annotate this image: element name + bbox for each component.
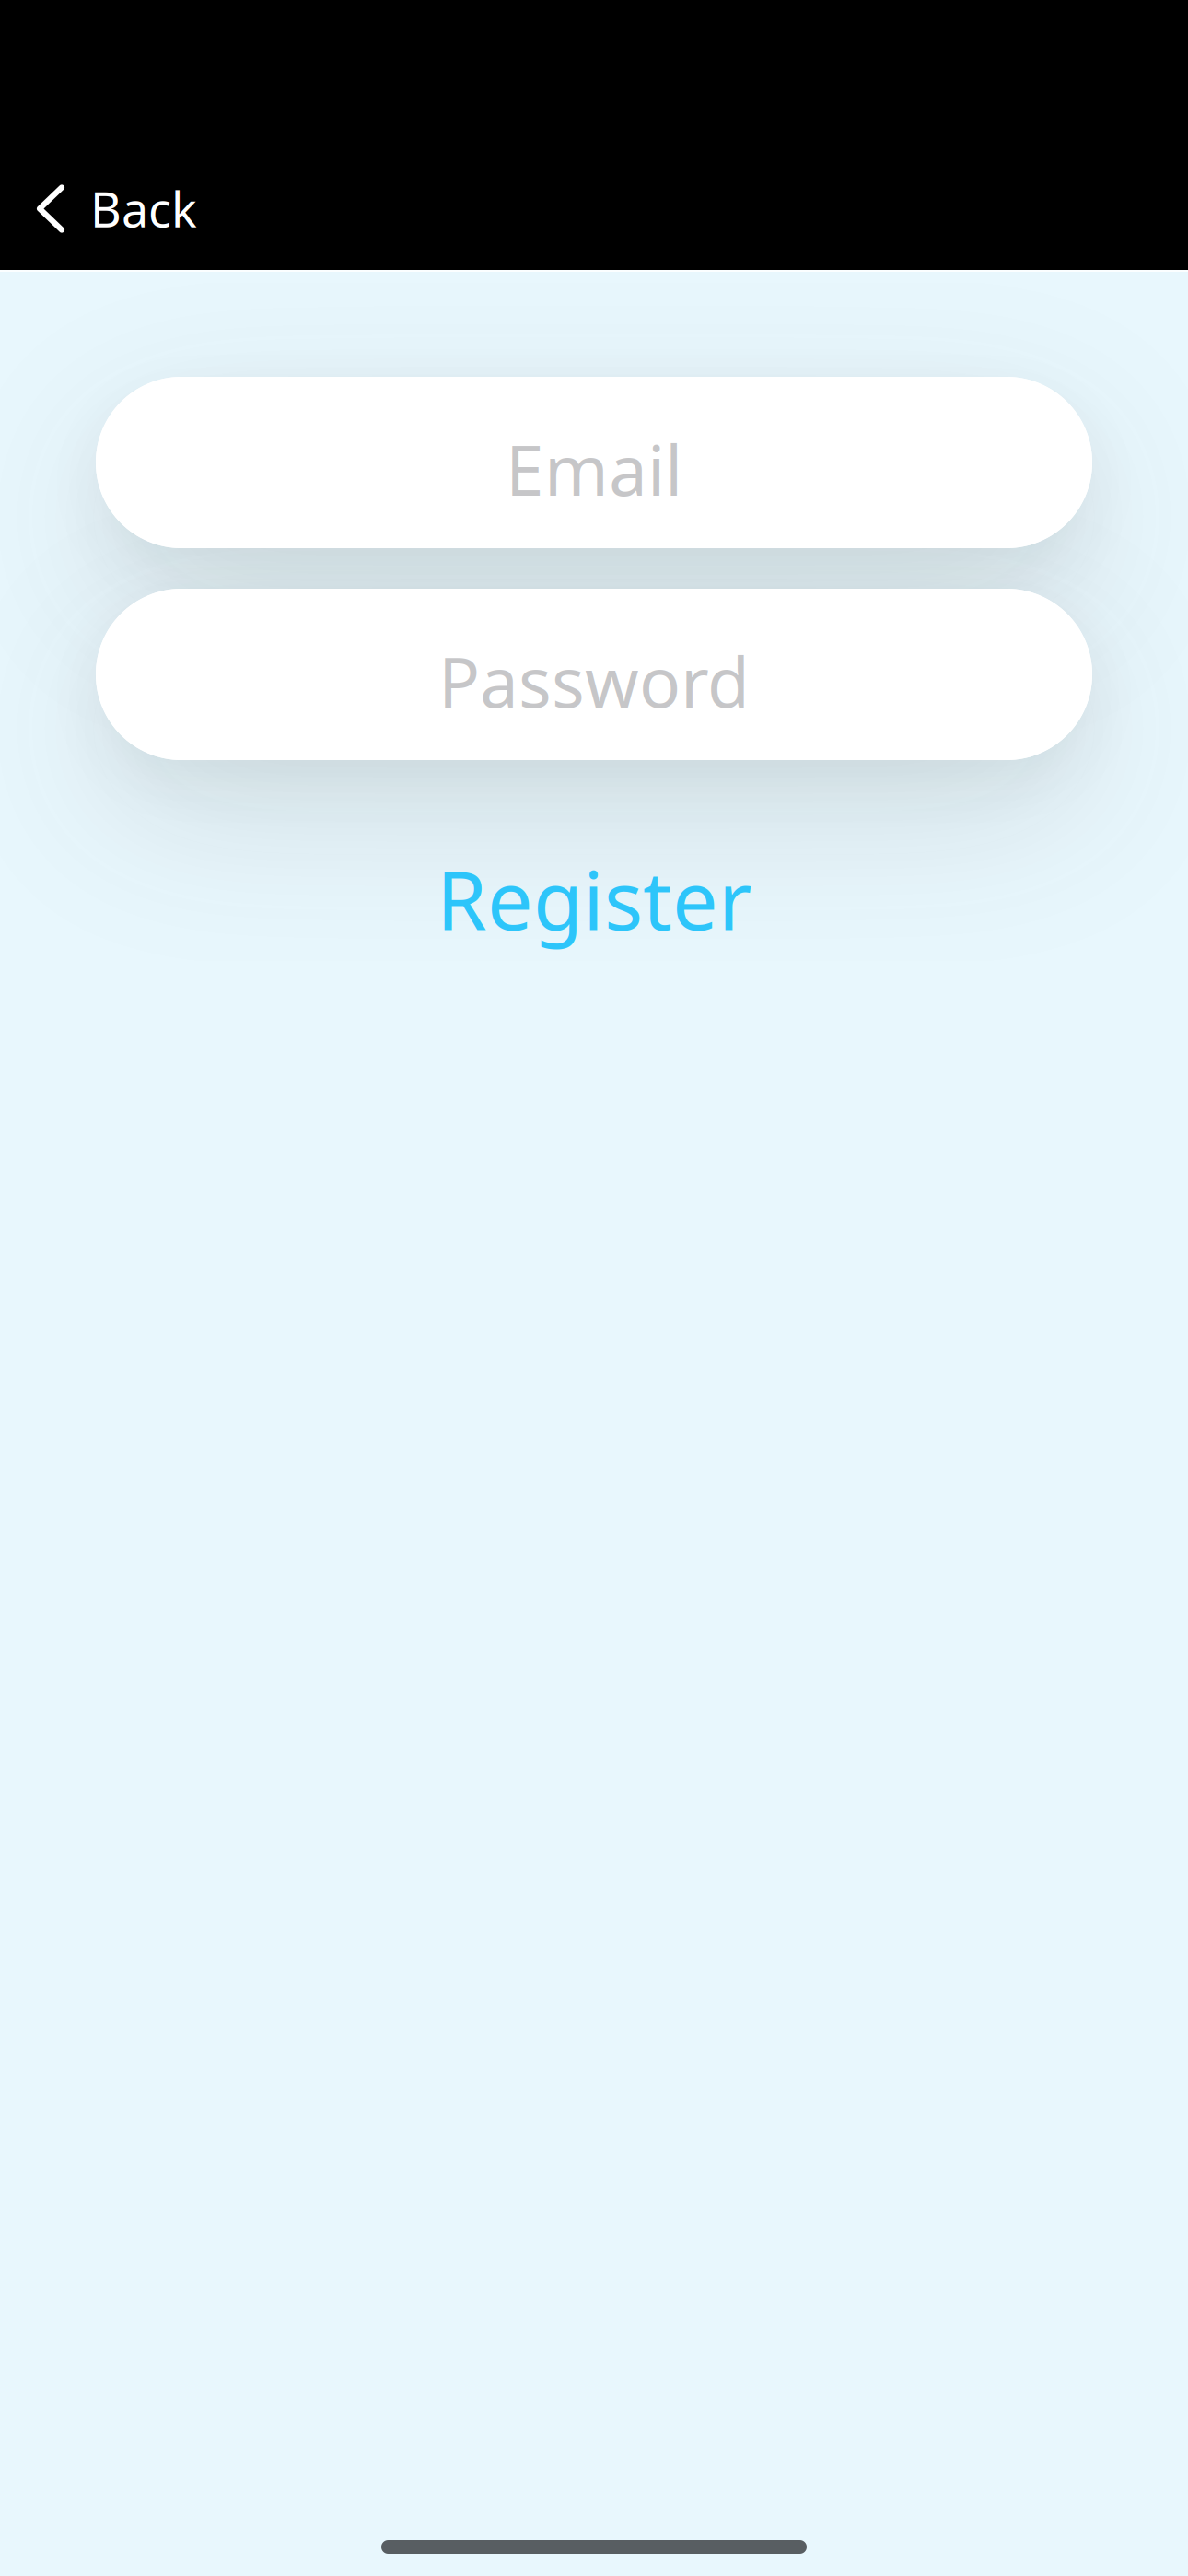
button[interactable]: Register: [411, 834, 777, 964]
staticText: Password: [438, 635, 750, 727]
staticText: Email: [506, 423, 682, 515]
staticText: Register: [437, 845, 751, 953]
staticText: Back: [90, 177, 197, 241]
button[interactable]: Back: [0, 147, 234, 270]
button[interactable]: Email: [96, 377, 1092, 548]
button[interactable]: Password: [96, 589, 1092, 760]
